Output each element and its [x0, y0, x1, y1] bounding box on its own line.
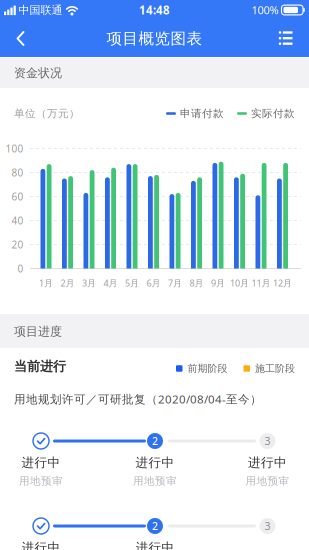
staticText: 中国联通	[18, 3, 62, 17]
staticText: 进行中	[248, 455, 287, 470]
button[interactable]	[13, 30, 29, 46]
staticText: 进行中	[135, 455, 174, 470]
staticText: 用地预审	[245, 475, 289, 487]
staticText: 单位（万元）	[14, 107, 80, 120]
staticText: 用地预审	[133, 475, 177, 487]
staticText: 3月	[82, 277, 96, 289]
staticText: 5月	[125, 277, 139, 289]
staticText: 14:48	[139, 2, 170, 18]
staticText: 实际付款	[251, 107, 295, 120]
staticText: 60	[11, 190, 23, 203]
staticText: 3	[264, 519, 270, 533]
staticText: 当前进行	[14, 358, 66, 374]
staticText: 9月	[211, 277, 225, 289]
staticText: 前期阶段	[187, 362, 227, 375]
staticText: 项目概览图表	[106, 29, 202, 48]
staticText: 用地预审	[19, 475, 63, 487]
staticText: 1月	[39, 277, 53, 289]
staticText: 申请付款	[180, 107, 224, 120]
staticText: 10月	[230, 277, 249, 289]
staticText: 进行中	[21, 540, 60, 550]
staticText: 20	[11, 238, 23, 251]
staticText: 用地规划许可／可研批复（2020/08/04-至今）	[14, 391, 262, 407]
staticText: 100	[5, 142, 23, 155]
staticText: 进行中	[21, 455, 60, 470]
staticText: 80	[11, 166, 23, 179]
staticText: 4月	[103, 277, 117, 289]
staticText: 40	[11, 214, 23, 227]
staticText: 100%	[251, 3, 278, 17]
staticText: 施工阶段	[255, 362, 295, 375]
staticText: 11月	[251, 277, 270, 289]
staticText: 0	[17, 262, 23, 275]
staticText: 7月	[168, 277, 182, 289]
staticText: 12月	[273, 277, 292, 289]
staticText: 资金状况	[14, 66, 62, 80]
staticText: 2月	[60, 277, 74, 289]
staticText: 8月	[189, 277, 203, 289]
staticText: 2	[152, 519, 158, 533]
button[interactable]	[275, 30, 295, 46]
staticText: 3	[264, 434, 270, 448]
staticText: 项目进度	[14, 324, 62, 339]
staticText: 6月	[146, 277, 160, 289]
staticText: 进行中	[135, 540, 174, 550]
staticText: 2	[152, 434, 158, 448]
